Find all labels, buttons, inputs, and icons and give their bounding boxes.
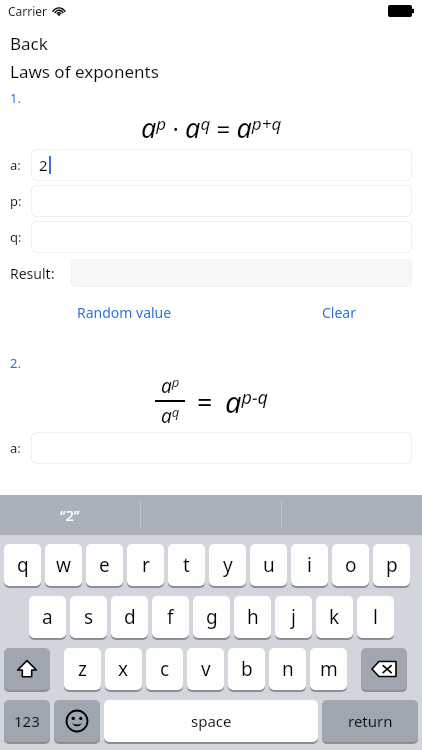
- staticText: b: [241, 656, 253, 682]
- staticText: p: [386, 552, 398, 578]
- staticText: a:: [10, 156, 21, 174]
- button[interactable]: Clear: [322, 303, 356, 322]
- staticText: f: [167, 604, 174, 630]
- button[interactable]: Shift: [2, 648, 52, 690]
- button[interactable]: a: [27, 596, 68, 638]
- button[interactable]: y: [207, 544, 248, 586]
- staticText: 2.: [10, 354, 21, 372]
- button[interactable]: b: [226, 648, 267, 690]
- button[interactable]: d: [109, 596, 150, 638]
- staticText: Back: [10, 32, 48, 55]
- staticText: t: [183, 552, 190, 578]
- button[interactable]: Emoji: [52, 700, 102, 742]
- staticText: Random value: [77, 303, 172, 322]
- staticText: v: [201, 656, 211, 682]
- button[interactable]: p: [371, 544, 412, 586]
- staticText: Carrier: [8, 3, 48, 19]
- button[interactable]: q: [2, 544, 43, 586]
- staticText: q: [17, 552, 29, 578]
- button[interactable]: c: [144, 648, 185, 690]
- button[interactable]: i: [289, 544, 330, 586]
- staticText: o: [345, 552, 357, 578]
- staticText: a:: [10, 439, 21, 457]
- staticText: s: [84, 604, 94, 630]
- staticText: ap · aq = ap+q: [141, 109, 282, 146]
- staticText: 123: [14, 711, 40, 731]
- button[interactable]: “2”: [0, 495, 140, 535]
- staticText: u: [263, 552, 275, 578]
- button[interactable]: r: [125, 544, 166, 586]
- staticText: ap−q: [225, 382, 268, 421]
- button[interactable]: 123: [2, 700, 52, 742]
- staticText: k: [329, 604, 340, 630]
- staticText: m: [320, 656, 338, 682]
- staticText: return: [348, 711, 393, 731]
- button[interactable]: [31, 432, 412, 464]
- staticText: w: [56, 552, 71, 578]
- staticText: space: [191, 711, 232, 731]
- button[interactable]: 2: [31, 149, 412, 181]
- staticText: e: [99, 552, 110, 578]
- staticText: l: [373, 604, 378, 630]
- button[interactable]: v: [185, 648, 226, 690]
- staticText: p:: [10, 192, 22, 210]
- staticText: c: [160, 656, 170, 682]
- staticText: Result:: [10, 264, 55, 283]
- staticText: z: [78, 656, 87, 682]
- staticText: j: [291, 604, 296, 630]
- staticText: Clear: [322, 303, 356, 322]
- staticText: d: [124, 604, 136, 630]
- button[interactable]: x: [103, 648, 144, 690]
- staticText: 1.: [10, 89, 21, 107]
- staticText: n: [282, 656, 294, 682]
- staticText: =: [197, 383, 213, 420]
- button[interactable]: h: [232, 596, 273, 638]
- button[interactable]: Random value: [77, 303, 172, 322]
- button[interactable]: n: [267, 648, 308, 690]
- button[interactable]: e: [84, 544, 125, 586]
- staticText: g: [206, 604, 218, 630]
- staticText: q:: [10, 228, 22, 246]
- staticText: x: [118, 656, 129, 682]
- button[interactable]: k: [314, 596, 355, 638]
- staticText: Laws of exponents: [10, 60, 159, 83]
- staticText: ap: [161, 373, 180, 399]
- button[interactable]: g: [191, 596, 232, 638]
- staticText: h: [247, 604, 259, 630]
- button[interactable]: u: [248, 544, 289, 586]
- button[interactable]: return: [320, 700, 420, 742]
- button[interactable]: space: [102, 700, 320, 742]
- staticText: “2”: [60, 505, 80, 525]
- button[interactable]: o: [330, 544, 371, 586]
- staticText: i: [307, 552, 312, 578]
- staticText: a: [42, 604, 53, 630]
- button[interactable]: s: [68, 596, 109, 638]
- button[interactable]: w: [43, 544, 84, 586]
- button[interactable]: t: [166, 544, 207, 586]
- button[interactable]: l: [355, 596, 396, 638]
- button[interactable]: Backspace: [359, 648, 409, 690]
- button[interactable]: [31, 185, 412, 217]
- button[interactable]: j: [273, 596, 314, 638]
- button[interactable]: Back: [0, 32, 422, 55]
- staticText: aq: [161, 403, 180, 429]
- button[interactable]: z: [62, 648, 103, 690]
- staticText: r: [142, 552, 150, 578]
- button[interactable]: m: [308, 648, 349, 690]
- button[interactable]: [31, 221, 412, 253]
- staticText: 2: [39, 155, 48, 175]
- button[interactable]: f: [150, 596, 191, 638]
- staticText: y: [223, 552, 233, 578]
